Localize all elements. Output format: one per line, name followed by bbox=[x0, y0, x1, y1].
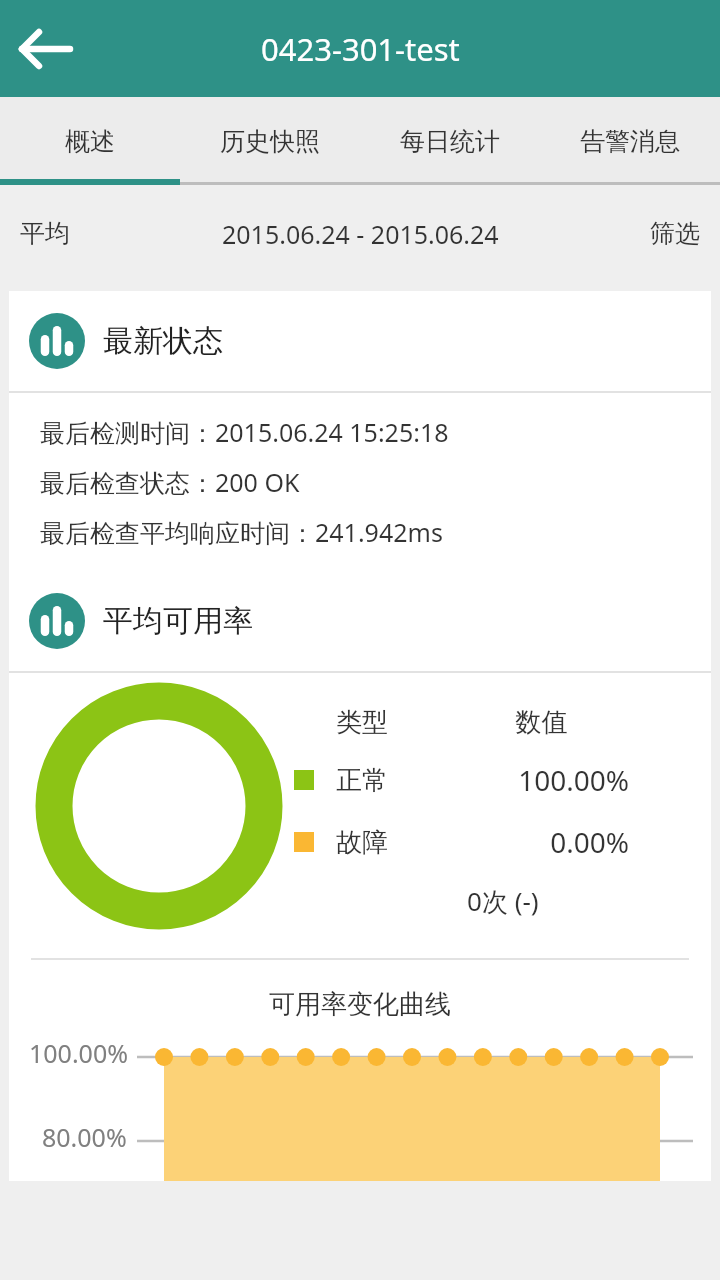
button[interactable]: 筛选 bbox=[650, 218, 700, 249]
staticText: 类型 bbox=[336, 706, 388, 739]
staticText: 故障 bbox=[336, 826, 388, 859]
button[interactable]: Back bbox=[10, 13, 82, 85]
button[interactable]: 历史快照 bbox=[180, 97, 360, 185]
staticText: 告警消息 bbox=[580, 126, 680, 157]
staticText: 历史快照 bbox=[220, 126, 320, 157]
staticText: 100.00% bbox=[454, 761, 629, 799]
button[interactable]: 概述 bbox=[0, 97, 180, 185]
button[interactable]: 最新状态 bbox=[9, 291, 711, 391]
staticText: 正常 bbox=[336, 764, 388, 797]
staticText: 最后检查平均响应时间：241.942ms bbox=[40, 515, 443, 549]
button[interactable]: 平均 bbox=[20, 218, 70, 249]
staticText: 平均可用率 bbox=[103, 602, 253, 640]
staticText: 概述 bbox=[65, 126, 115, 157]
staticText: 可用率变化曲线 bbox=[9, 988, 711, 1021]
staticText: 每日统计 bbox=[400, 126, 500, 157]
staticText: 最后检查状态：200 OK bbox=[40, 465, 300, 499]
staticText: 0.00% bbox=[454, 823, 629, 861]
button[interactable]: 2015.06.24 - 2015.06.24 bbox=[222, 217, 499, 251]
staticText: 0次 (-) bbox=[467, 883, 539, 919]
button[interactable]: 每日统计 bbox=[360, 97, 540, 185]
staticText: 最后检测时间：2015.06.24 15:25:18 bbox=[40, 415, 449, 449]
staticText: 最新状态 bbox=[103, 322, 223, 360]
staticText: 数值 bbox=[454, 706, 629, 739]
button[interactable]: 告警消息 bbox=[540, 97, 720, 185]
staticText: 80.00% bbox=[42, 1120, 127, 1154]
staticText: 100.00% bbox=[29, 1036, 128, 1070]
button[interactable]: 平均可用率 bbox=[9, 571, 711, 671]
staticText: 0423-301-test bbox=[261, 28, 460, 70]
